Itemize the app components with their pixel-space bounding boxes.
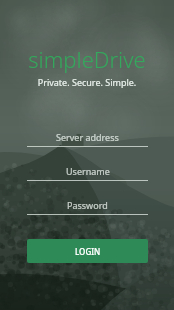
staticText: Username (66, 165, 110, 177)
staticText: Server address (56, 131, 119, 143)
button[interactable]: Password (27, 181, 148, 215)
staticText: LOGIN (75, 246, 101, 257)
staticText: Private. Secure. Simple. (0, 76, 174, 88)
button[interactable]: Server address (27, 113, 148, 147)
button[interactable]: Username (27, 147, 148, 181)
staticText: Password (67, 199, 108, 211)
staticText: simpleDrive (0, 44, 174, 74)
button[interactable]: LOGIN (27, 239, 148, 263)
